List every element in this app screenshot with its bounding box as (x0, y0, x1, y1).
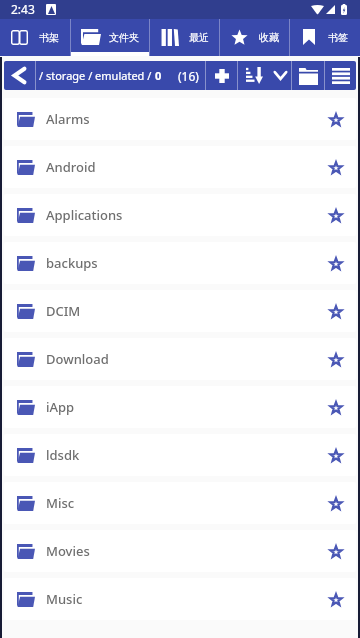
staticText: 书签 (328, 31, 348, 44)
button[interactable]: / storage / emulated / (36, 61, 205, 90)
staticText: 文件夹 (109, 31, 139, 44)
staticText: 0 (155, 68, 162, 83)
button[interactable]: 书架 (0, 19, 70, 56)
button[interactable]: Favorite (319, 390, 353, 424)
button[interactable]: Download (4, 338, 356, 380)
button[interactable]: Favorite (319, 246, 353, 280)
staticText: Alarms (46, 110, 90, 128)
staticText: ldsdk (46, 446, 80, 464)
staticText: Misc (46, 494, 75, 512)
staticText: Applications (46, 206, 123, 224)
button[interactable]: backups (4, 242, 356, 284)
button[interactable]: Favorite (319, 438, 353, 472)
button[interactable]: Alarms (4, 98, 356, 140)
button[interactable]: Favorite (319, 342, 353, 376)
button[interactable]: Android (4, 146, 356, 188)
button[interactable]: iApp (4, 386, 356, 428)
button[interactable]: Sort options (270, 61, 291, 90)
button[interactable]: 收藏 (220, 19, 289, 56)
staticText: 书架 (39, 31, 59, 44)
button[interactable]: 书签 (290, 19, 360, 56)
button[interactable]: Add (206, 61, 237, 90)
staticText: Download (46, 350, 109, 368)
button[interactable]: Favorite (319, 198, 353, 232)
button[interactable]: Back (4, 61, 35, 90)
button[interactable]: 文件夹 (71, 19, 149, 56)
button[interactable]: ldsdk (4, 434, 356, 476)
button[interactable]: Music (4, 578, 356, 620)
staticText: (16) (178, 68, 199, 84)
staticText: DCIM (46, 302, 81, 320)
button[interactable]: Favorite (319, 582, 353, 616)
button[interactable]: Favorite (319, 294, 353, 328)
button[interactable]: Menu (325, 61, 356, 90)
button[interactable]: Favorite (319, 150, 353, 184)
button[interactable]: Favorite (319, 102, 353, 136)
staticText: Movies (46, 542, 90, 560)
button[interactable]: Movies (4, 530, 356, 572)
button[interactable]: Sort (238, 61, 270, 90)
staticText: 最近 (189, 31, 209, 44)
button[interactable]: 最近 (150, 19, 219, 56)
staticText: Music (46, 590, 83, 608)
button[interactable]: Applications (4, 194, 356, 236)
button[interactable]: Misc (4, 482, 356, 524)
staticText: 收藏 (259, 31, 279, 44)
staticText: iApp (46, 398, 75, 416)
button[interactable]: Favorite (319, 534, 353, 568)
button[interactable]: Favorite (319, 486, 353, 520)
button[interactable]: DCIM (4, 290, 356, 332)
staticText: / storage / emulated / (39, 68, 155, 83)
button[interactable]: New folder (292, 61, 324, 90)
staticText: 2:43 (11, 1, 35, 17)
staticText: Android (46, 158, 96, 176)
staticText: backups (46, 254, 98, 272)
